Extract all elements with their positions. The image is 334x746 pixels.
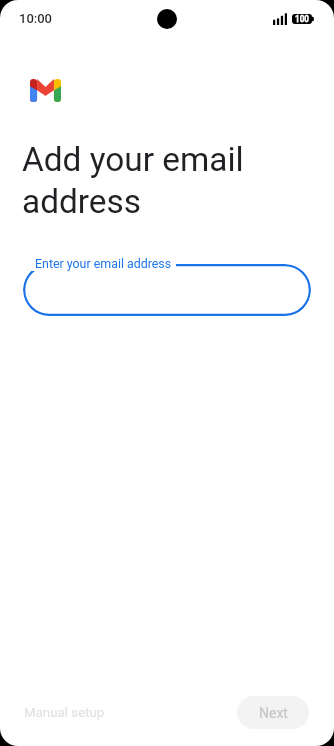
button[interactable] <box>23 264 311 316</box>
button[interactable]: Manual setup <box>16 696 113 730</box>
button[interactable]: Next <box>237 696 309 729</box>
staticText: 10:00 <box>19 11 53 26</box>
staticText: Next <box>259 705 288 721</box>
staticText: 100 <box>295 14 309 24</box>
staticText: Manual setup <box>24 705 105 721</box>
staticText: Enter your email address <box>35 256 172 271</box>
staticText: Add your email address <box>22 140 244 221</box>
